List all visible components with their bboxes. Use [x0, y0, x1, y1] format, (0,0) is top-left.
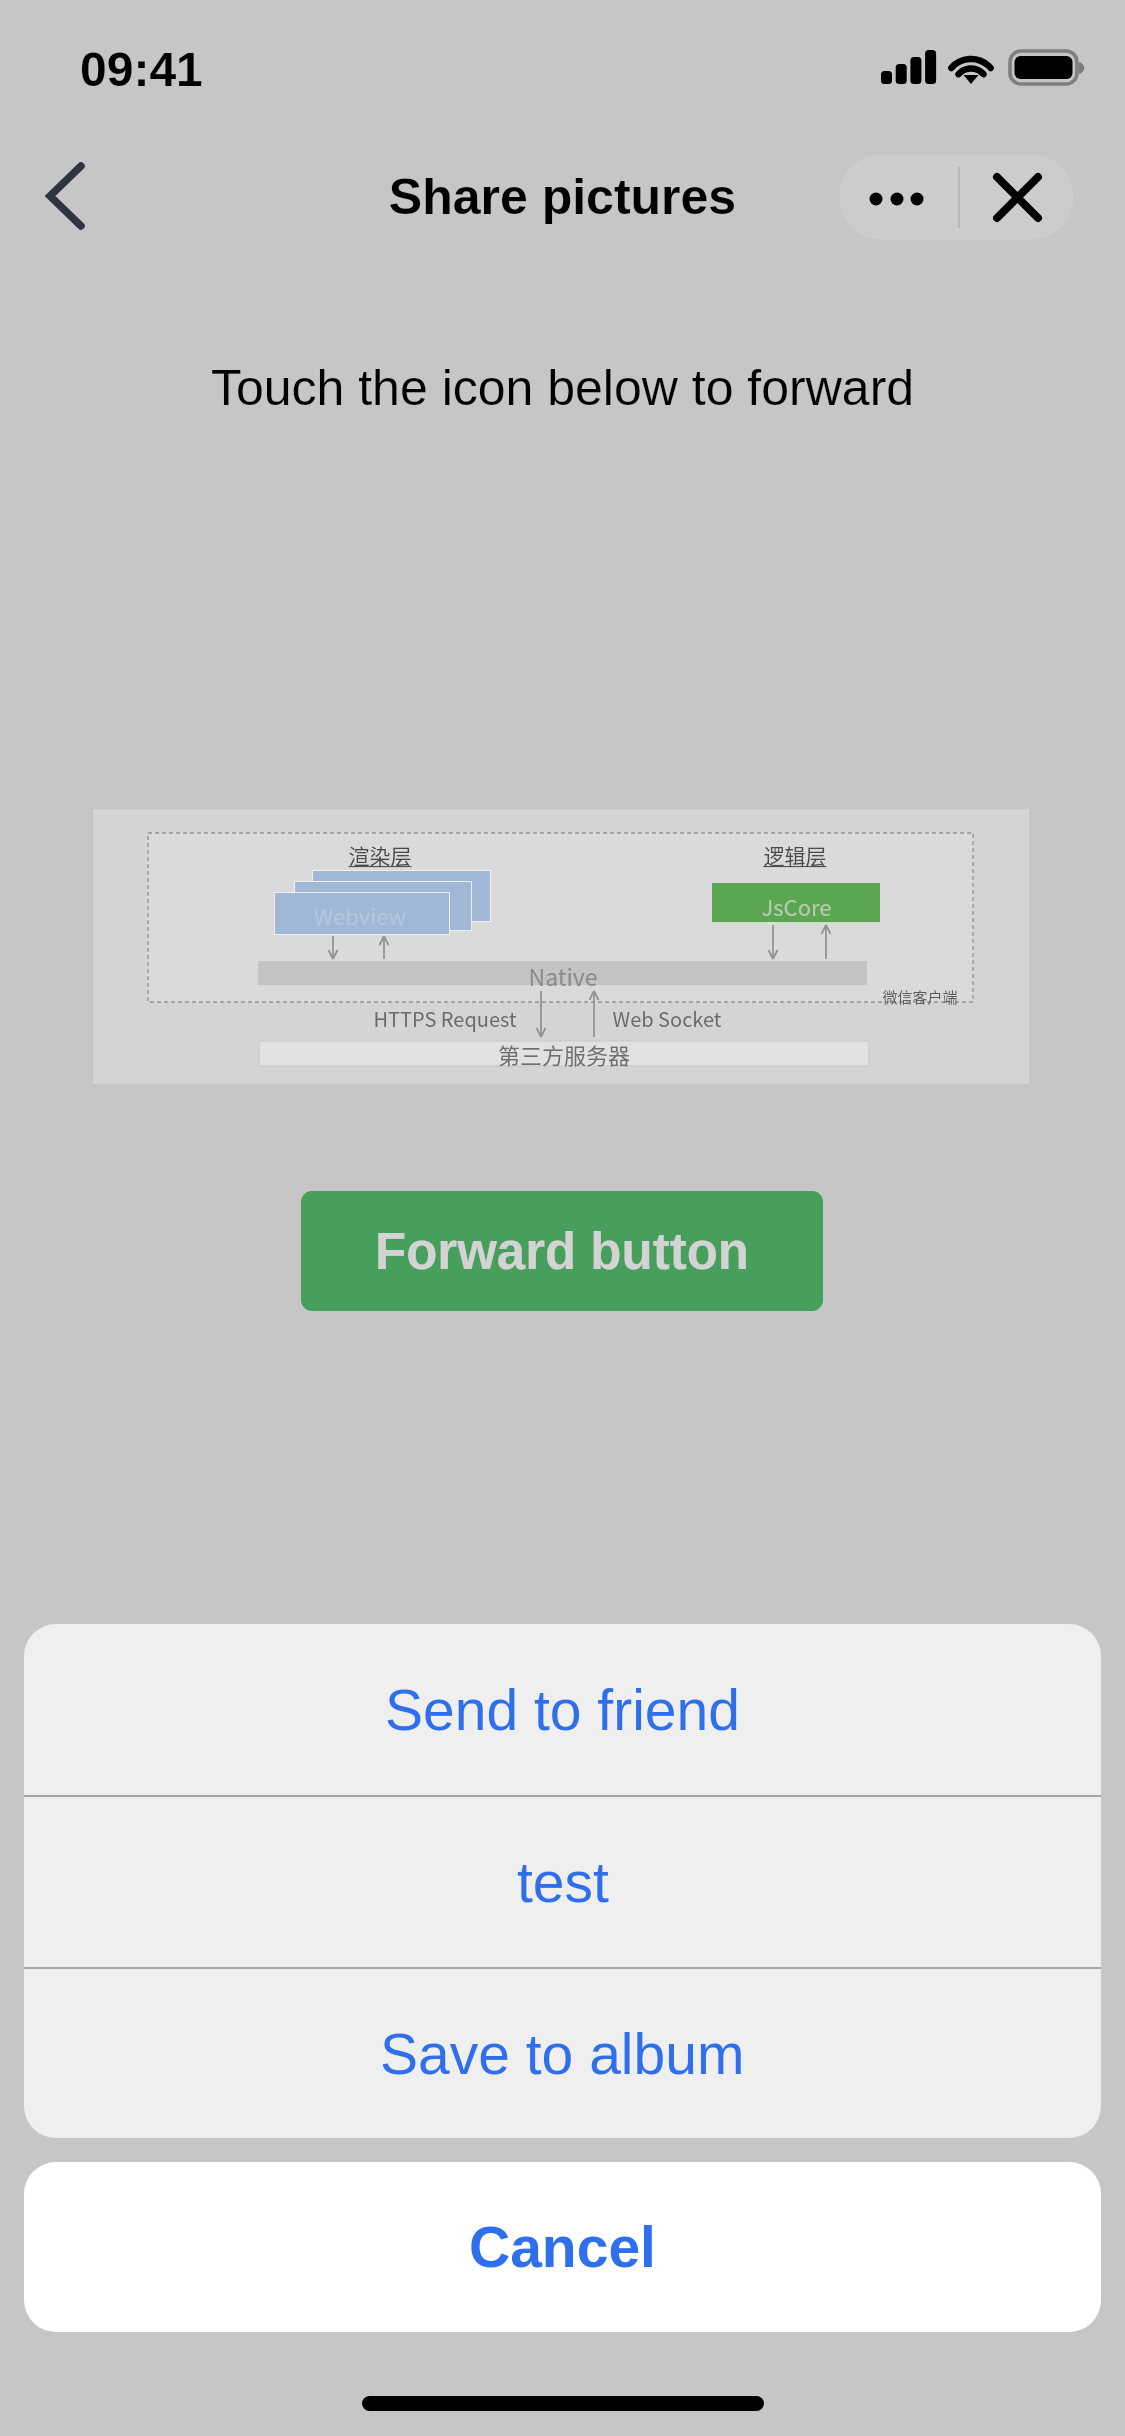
staticText: Share pictures	[0, 169, 1125, 225]
staticText: 逻辑层	[745, 840, 845, 870]
button[interactable]: Save to album	[24, 1969, 1101, 2138]
staticText: 09:41	[80, 43, 203, 97]
button[interactable]: test	[24, 1797, 1101, 1967]
button[interactable]: Back	[24, 142, 132, 250]
staticText: 微信客户端	[875, 986, 965, 1008]
button[interactable]: More options	[838, 153, 958, 241]
staticText: Cancel	[469, 2215, 656, 2279]
button[interactable]: Send to friend	[24, 1624, 1101, 1795]
staticText: Forward button	[375, 1223, 749, 1280]
staticText: Webview	[275, 899, 445, 931]
staticText: test	[517, 1850, 609, 1914]
staticText: 第三方服务器	[261, 1038, 867, 1070]
staticText: JsCore	[712, 890, 881, 922]
button[interactable]: Close	[960, 153, 1075, 241]
staticText: Save to album	[380, 2022, 745, 2086]
staticText: HTTPS Request	[338, 1004, 552, 1033]
staticText: 渲染层	[330, 840, 430, 870]
staticText: Send to friend	[385, 1678, 740, 1742]
staticText: Touch the icon below to forward	[0, 360, 1125, 416]
button[interactable]: Cancel	[24, 2162, 1101, 2332]
staticText: Web Socket	[560, 1004, 774, 1033]
button[interactable]: Forward button	[301, 1191, 823, 1311]
staticText: Native	[259, 959, 867, 992]
